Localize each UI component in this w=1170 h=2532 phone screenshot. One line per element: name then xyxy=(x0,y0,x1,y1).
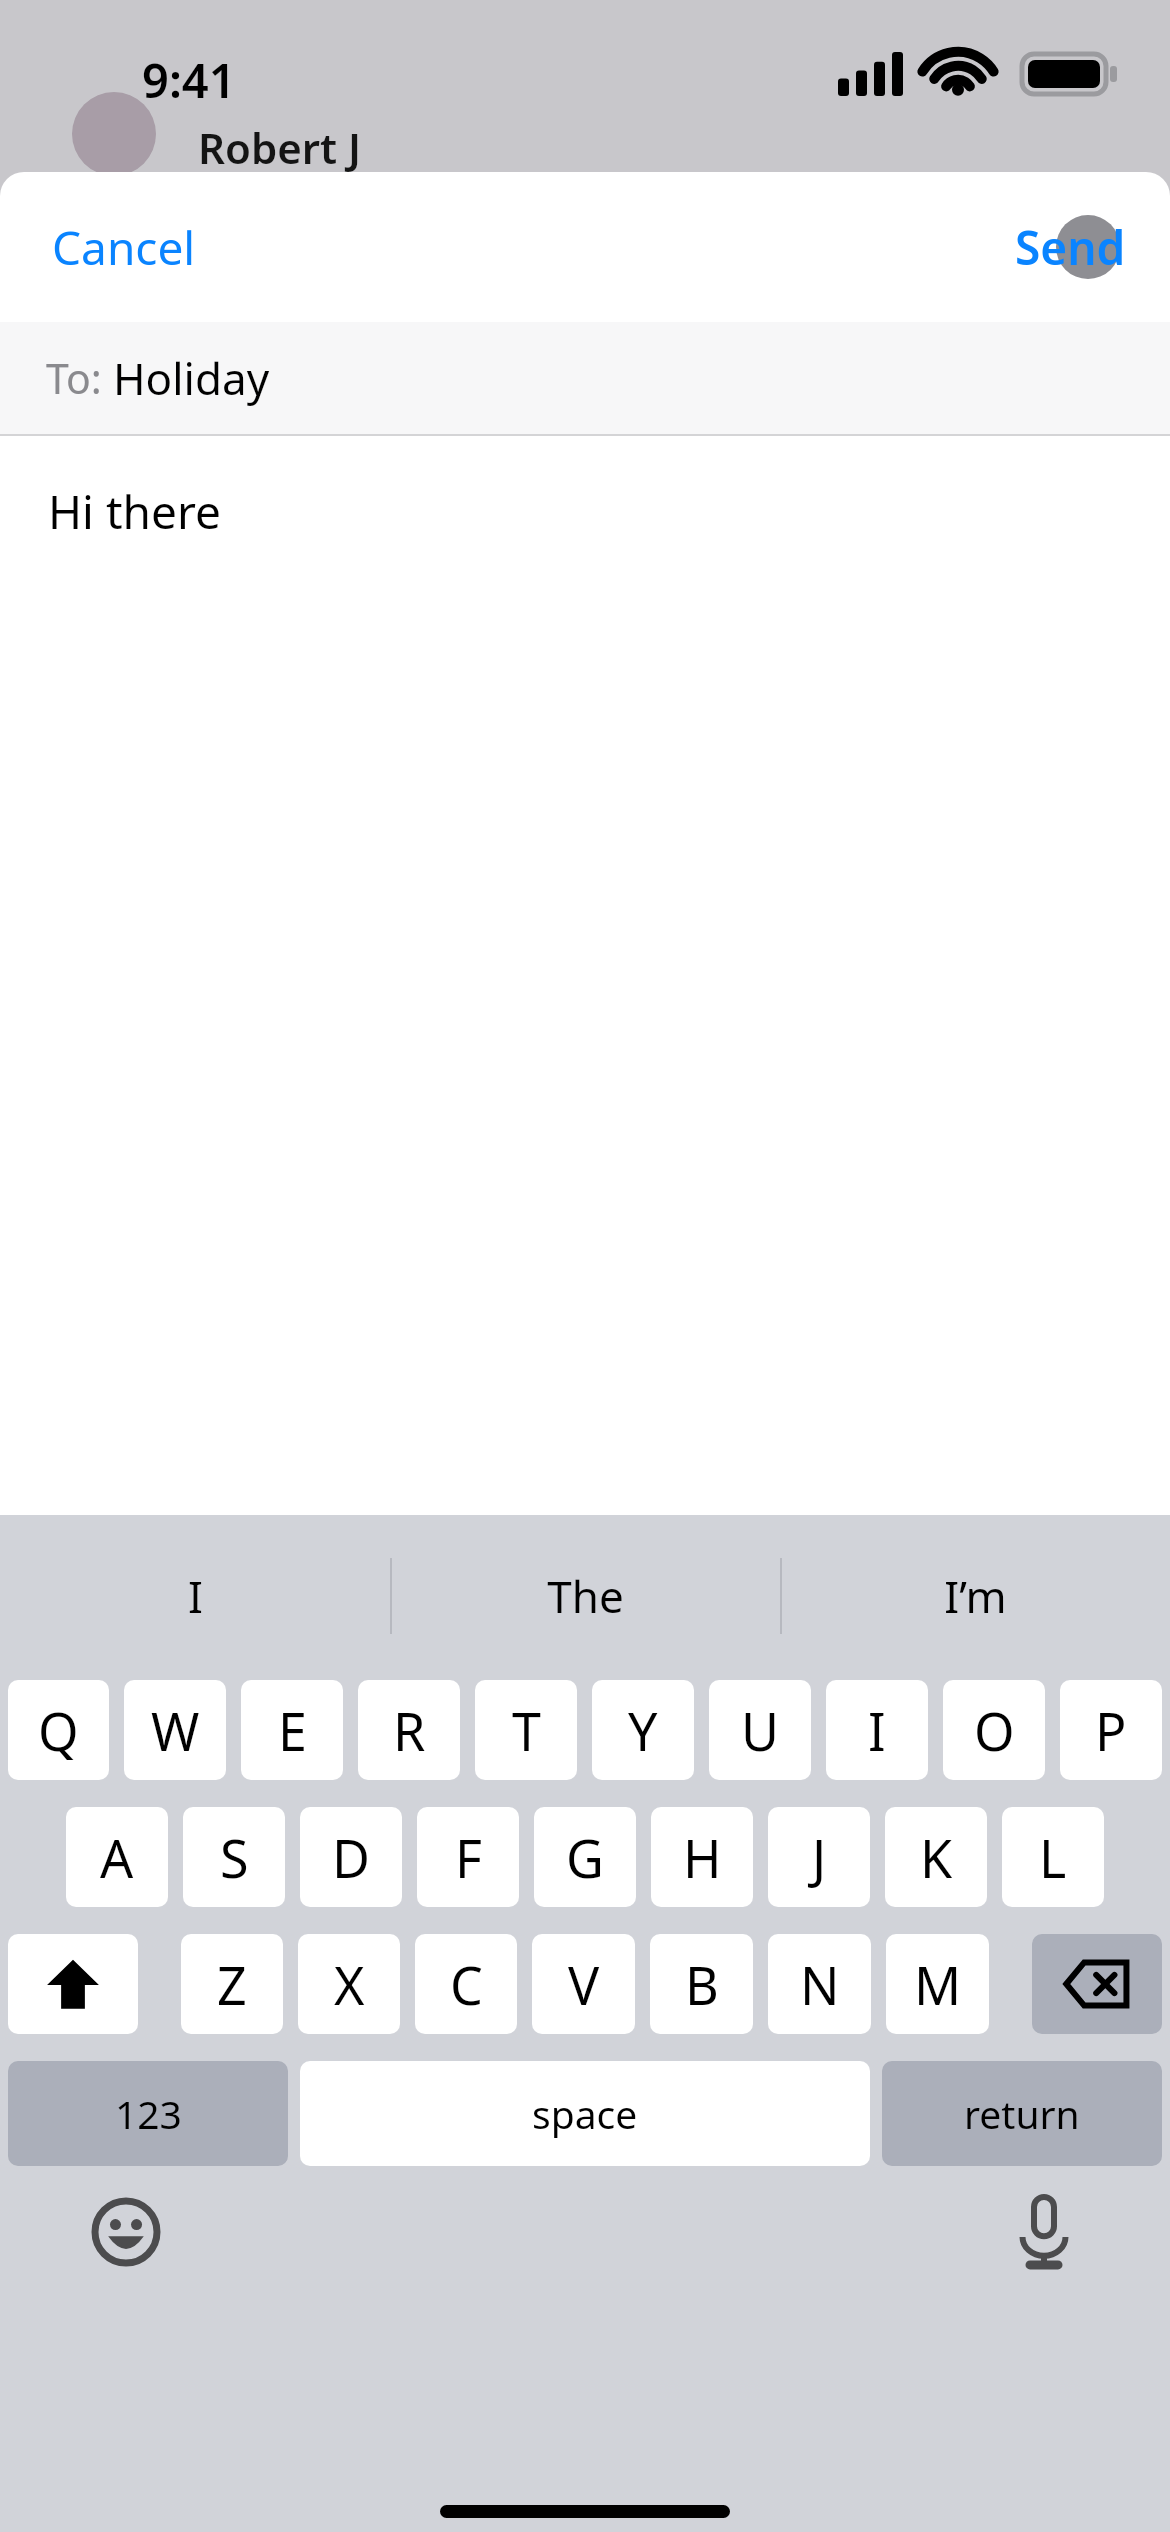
button[interactable]: Dictation xyxy=(1004,2192,1084,2272)
button[interactable]: space xyxy=(300,2061,870,2166)
staticText: G xyxy=(566,1822,604,1893)
button[interactable]: T xyxy=(475,1680,577,1780)
button[interactable]: U xyxy=(709,1680,811,1780)
staticText: To: xyxy=(46,350,113,406)
staticText: V xyxy=(568,1949,600,2020)
staticText: Cancel xyxy=(52,216,196,279)
button[interactable]: N xyxy=(768,1934,871,2034)
button[interactable]: O xyxy=(943,1680,1045,1780)
staticText: Send xyxy=(1015,216,1126,279)
staticText: P xyxy=(1095,1695,1127,1766)
staticText: X xyxy=(334,1949,365,2020)
staticText: I xyxy=(188,1566,203,1626)
button[interactable]: Cancel xyxy=(22,198,226,297)
button[interactable]: V xyxy=(532,1934,635,2034)
staticText: K xyxy=(920,1822,953,1893)
staticText: space xyxy=(532,2087,638,2140)
button[interactable]: X xyxy=(298,1934,400,2034)
button[interactable]: D xyxy=(300,1807,402,1907)
staticText: I’m xyxy=(944,1566,1007,1626)
staticText: T xyxy=(512,1695,541,1766)
staticText: D xyxy=(332,1822,370,1893)
staticText: C xyxy=(450,1949,483,2020)
staticText: Hi there xyxy=(48,480,221,543)
button[interactable]: I’m xyxy=(780,1515,1170,1677)
button[interactable]: E xyxy=(241,1680,343,1780)
button[interactable]: H xyxy=(651,1807,753,1907)
button[interactable]: M xyxy=(886,1934,989,2034)
button[interactable]: G xyxy=(534,1807,636,1907)
button[interactable]: Backspace xyxy=(1032,1934,1162,2034)
staticText: W xyxy=(151,1695,200,1766)
button[interactable]: Z xyxy=(181,1934,283,2034)
staticText: Holiday xyxy=(113,348,270,408)
staticText: Y xyxy=(628,1695,658,1766)
staticText: J xyxy=(812,1822,827,1893)
button[interactable]: B xyxy=(650,1934,753,2034)
button[interactable]: Send xyxy=(985,198,1156,297)
button[interactable]: R xyxy=(358,1680,460,1780)
staticText: 9:41 xyxy=(142,48,236,112)
button[interactable]: Emoji keyboard xyxy=(86,2192,166,2272)
staticText: B xyxy=(685,1949,719,2020)
staticText: return xyxy=(964,2087,1080,2140)
button[interactable]: J xyxy=(768,1807,870,1907)
staticText: U xyxy=(741,1695,780,1766)
button[interactable]: Q xyxy=(8,1680,109,1780)
staticText: E xyxy=(278,1695,307,1766)
button[interactable]: C xyxy=(415,1934,517,2034)
button[interactable]: L xyxy=(1002,1807,1104,1907)
staticText: N xyxy=(800,1949,840,2020)
staticText: R xyxy=(393,1695,426,1766)
button[interactable]: I xyxy=(826,1680,928,1780)
staticText: F xyxy=(455,1822,482,1893)
button[interactable]: P xyxy=(1060,1680,1162,1780)
staticText: I xyxy=(868,1695,886,1766)
staticText: A xyxy=(100,1822,134,1893)
staticText: Q xyxy=(38,1695,79,1766)
staticText: The xyxy=(547,1566,624,1626)
staticText: S xyxy=(220,1822,249,1893)
staticText: O xyxy=(974,1695,1015,1766)
button[interactable]: K xyxy=(885,1807,987,1907)
button[interactable]: F xyxy=(417,1807,519,1907)
button[interactable]: Hi there xyxy=(0,436,1170,1515)
staticText: Robert J xyxy=(198,119,361,176)
button[interactable]: A xyxy=(66,1807,168,1907)
button[interactable]: W xyxy=(124,1680,226,1780)
staticText: 123 xyxy=(115,2087,182,2140)
staticText: H xyxy=(683,1822,722,1893)
staticText: M xyxy=(914,1949,962,2020)
button[interactable]: Shift xyxy=(8,1934,138,2034)
staticText: Z xyxy=(217,1949,247,2020)
button[interactable]: Y xyxy=(592,1680,694,1780)
button[interactable]: To: xyxy=(0,322,1170,434)
button[interactable]: The xyxy=(390,1515,780,1677)
button[interactable]: return xyxy=(882,2061,1162,2166)
button[interactable]: S xyxy=(183,1807,285,1907)
staticText: L xyxy=(1039,1822,1067,1893)
button[interactable]: I xyxy=(0,1515,390,1677)
button[interactable]: 123 xyxy=(8,2061,288,2166)
